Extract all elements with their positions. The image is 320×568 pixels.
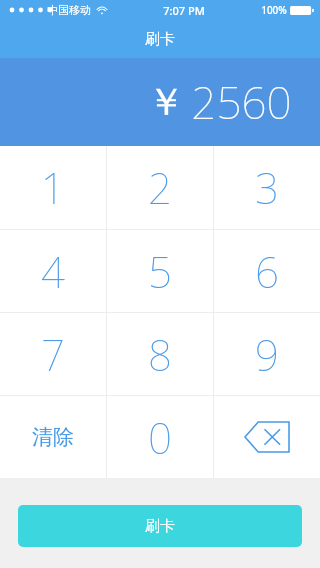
staticText: ￥: [147, 78, 185, 126]
button[interactable]: 1: [0, 146, 106, 229]
button[interactable]: 7: [0, 313, 106, 395]
staticText: 清除: [32, 424, 74, 450]
staticText: 5: [148, 243, 172, 300]
staticText: 刷卡: [145, 30, 175, 49]
staticText: 6: [255, 243, 279, 300]
staticText: 4: [41, 243, 65, 300]
button[interactable]: 0: [107, 396, 213, 478]
button[interactable]: 2: [107, 146, 213, 229]
button[interactable]: 9: [214, 313, 320, 395]
staticText: 7:07 PM: [163, 3, 205, 18]
button[interactable]: 清除: [0, 396, 106, 478]
staticText: 7: [41, 326, 65, 383]
button[interactable]: 4: [0, 230, 106, 312]
staticText: 0: [148, 409, 172, 466]
button[interactable]: 8: [107, 313, 213, 395]
staticText: 刷卡: [145, 517, 175, 536]
button[interactable]: 刷卡: [18, 505, 302, 547]
staticText: 100%: [261, 3, 287, 17]
staticText: 3: [255, 159, 279, 216]
staticText: 中国移动: [47, 3, 91, 17]
staticText: 2560: [191, 72, 292, 132]
staticText: 8: [148, 326, 172, 383]
button[interactable]: 6: [214, 230, 320, 312]
button[interactable]: 5: [107, 230, 213, 312]
staticText: 9: [255, 326, 279, 383]
button[interactable]: Backspace: [214, 396, 320, 478]
staticText: 1: [41, 159, 65, 216]
staticText: 2: [148, 159, 172, 216]
button[interactable]: 3: [214, 146, 320, 229]
